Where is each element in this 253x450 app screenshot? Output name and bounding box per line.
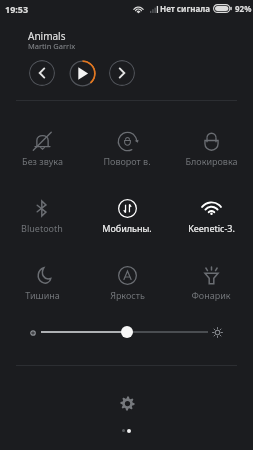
staticText: Поворот в. <box>103 155 151 167</box>
button[interactable]: Фонарик <box>171 264 251 308</box>
staticText: Keenetic-3. <box>188 222 235 234</box>
staticText: Мобильны. <box>102 222 152 234</box>
staticText: Нет сигнала <box>160 3 211 14</box>
button[interactable]: Яркость <box>87 264 167 308</box>
staticText: Martin Garrix <box>28 41 76 51</box>
staticText: Тишина <box>25 289 60 301</box>
button[interactable]: Next <box>109 60 135 86</box>
button[interactable]: Low brightness <box>28 328 38 338</box>
button[interactable]: Settings <box>120 396 135 411</box>
staticText: 92% <box>235 3 252 14</box>
staticText: Яркость <box>110 289 145 301</box>
button[interactable]: Keenetic-3. <box>171 197 251 241</box>
button[interactable]: Play <box>69 60 96 87</box>
staticText: Фонарик <box>191 289 231 301</box>
button[interactable]: Без звука <box>2 130 82 174</box>
button[interactable] <box>41 331 208 333</box>
button[interactable]: High brightness <box>212 327 223 338</box>
staticText: Animals <box>28 29 66 43</box>
button[interactable]: Мобильны. <box>87 197 167 241</box>
button[interactable]: Previous <box>29 60 55 86</box>
button[interactable]: Bluetooth <box>2 197 82 241</box>
button[interactable]: Поворот в. <box>87 130 167 174</box>
button[interactable]: Тишина <box>2 264 82 308</box>
staticText: Без звука <box>22 155 63 167</box>
button[interactable]: Блокировка <box>171 130 251 174</box>
staticText: 19:53 <box>5 3 29 15</box>
staticText: Bluetooth <box>21 222 63 234</box>
staticText: Блокировка <box>185 155 238 167</box>
